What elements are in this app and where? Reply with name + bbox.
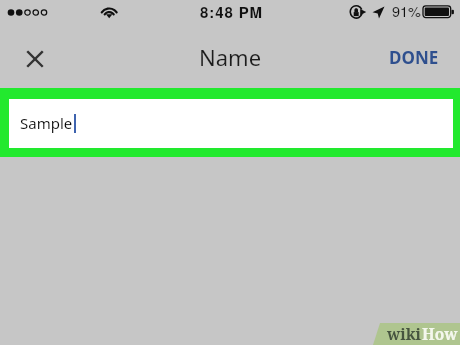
staticText: 8:48 PM [200, 1, 263, 22]
button[interactable]: Sample [9, 99, 453, 148]
staticText: wiki [387, 323, 422, 344]
button[interactable]: Name [190, 42, 270, 68]
staticText: Sample [20, 113, 73, 133]
button[interactable]: DONE [386, 44, 442, 70]
staticText: DONE [389, 46, 439, 69]
staticText: How [422, 323, 458, 344]
staticText: Name [199, 42, 262, 68]
button[interactable]: Close [18, 42, 51, 75]
staticText: 91% [392, 0, 422, 21]
